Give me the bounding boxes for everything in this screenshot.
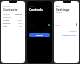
staticText: General [56, 11, 63, 13]
staticText: Controls [29, 7, 43, 11]
staticText: Updated [69, 30, 77, 32]
staticText: Lights [29, 24, 35, 26]
staticText: Overview [3, 5, 11, 7]
button[interactable]: Wi-Fi [56, 23, 77, 26]
staticText: Cell [19, 25, 23, 27]
staticText: Ready [44, 29, 50, 31]
staticText: Contacts [3, 7, 18, 11]
staticText: Home [17, 19, 23, 21]
staticText: Benedict [3, 22, 11, 24]
button[interactable]: Recents [3, 13, 23, 15]
button[interactable]: Benedict [3, 22, 23, 24]
button[interactable]: Amelia [3, 19, 23, 21]
button[interactable]: Back [56, 5, 60, 7]
staticText: Turn on [36, 34, 43, 36]
button[interactable]: Home [29, 5, 34, 7]
button[interactable]: Cecil [3, 25, 23, 27]
staticText: Favorites [3, 16, 11, 18]
button[interactable]: Turn on [29, 33, 50, 37]
staticText: Settings [56, 7, 70, 11]
staticText: Work [18, 22, 23, 24]
button[interactable]: Favorites [3, 16, 23, 18]
staticText: Wi-Fi [56, 24, 61, 26]
button[interactable]: Manage account [62, 34, 77, 36]
staticText: Cecil [3, 25, 8, 27]
staticText: 12 [20, 16, 23, 18]
staticText: Recents [3, 13, 10, 15]
button[interactable]: Lights [29, 24, 50, 26]
staticText: New list [15, 13, 23, 15]
staticText: Amelia [3, 19, 9, 21]
